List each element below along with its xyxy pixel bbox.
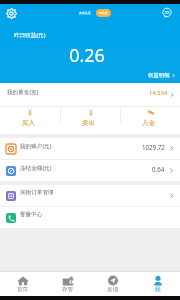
staticText: 首页 <box>17 286 29 293</box>
staticText: 存管 <box>62 286 74 293</box>
button[interactable]: 发现 <box>90 272 135 296</box>
button[interactable]: 入金 <box>121 107 180 134</box>
button[interactable]: 我 <box>135 272 180 296</box>
button[interactable]: Settings <box>2 5 21 21</box>
staticText: 我 <box>155 286 161 293</box>
staticText: 实名认证 <box>79 11 91 15</box>
button[interactable]: 冻结金额(元) <box>0 160 180 181</box>
staticText: 14.554 <box>149 89 168 97</box>
staticText: 已认证 <box>99 11 108 15</box>
button[interactable]: 卖出 <box>61 107 120 134</box>
staticText: 卖出 <box>82 119 95 127</box>
button[interactable]: 首页 <box>0 272 45 296</box>
button[interactable]: 收益明细 <box>147 72 177 79</box>
staticText: 1029.72 <box>142 143 165 151</box>
staticText: 我的账户(元) <box>20 142 52 150</box>
button[interactable]: 客服中心 <box>0 207 180 228</box>
button[interactable]: 我的黄金(克) <box>0 83 180 106</box>
button[interactable]: 已认证 <box>96 9 111 17</box>
staticText: 入金 <box>142 119 155 127</box>
staticText: 0.26 <box>0 43 177 68</box>
staticText: 我的黄金(克) <box>7 88 39 96</box>
staticText: 客服中心 <box>20 211 43 218</box>
staticText: 买入 <box>22 119 35 127</box>
staticText: 冻结金额(元) <box>20 164 52 172</box>
staticText: 收益明细 <box>148 72 170 79</box>
button[interactable]: Messages <box>158 5 176 20</box>
staticText: 昨日收益(元) <box>14 31 46 39</box>
button[interactable]: 我的账户(元) <box>0 138 180 159</box>
button[interactable]: 存管 <box>45 272 90 296</box>
button[interactable]: 实物订单管理 <box>0 185 180 206</box>
staticText: 实物订单管理 <box>20 189 54 196</box>
staticText: 0.64 <box>152 165 165 173</box>
staticText: 发现 <box>107 286 119 293</box>
button[interactable]: 买入 <box>0 107 60 134</box>
